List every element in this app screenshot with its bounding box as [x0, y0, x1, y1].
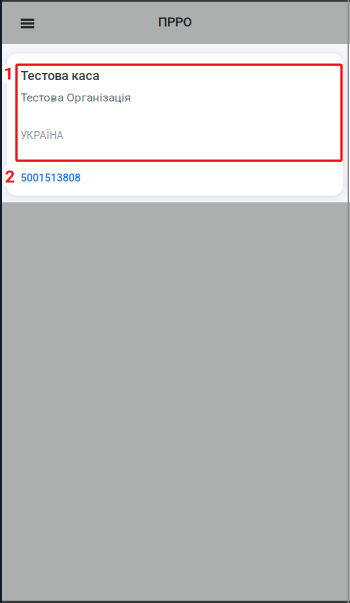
button[interactable]: Open navigation menu: [11, 8, 44, 39]
staticText: УКРАЇНА: [20, 129, 63, 141]
staticText: 5001513808: [20, 171, 80, 184]
staticText: ПРРО: [158, 14, 192, 30]
staticText: Тестова каса: [20, 68, 99, 83]
staticText: 2: [5, 166, 15, 187]
staticText: 1: [4, 63, 14, 84]
staticText: Тестова Організація: [20, 91, 130, 104]
button[interactable]: 5001513808: [20, 171, 80, 184]
